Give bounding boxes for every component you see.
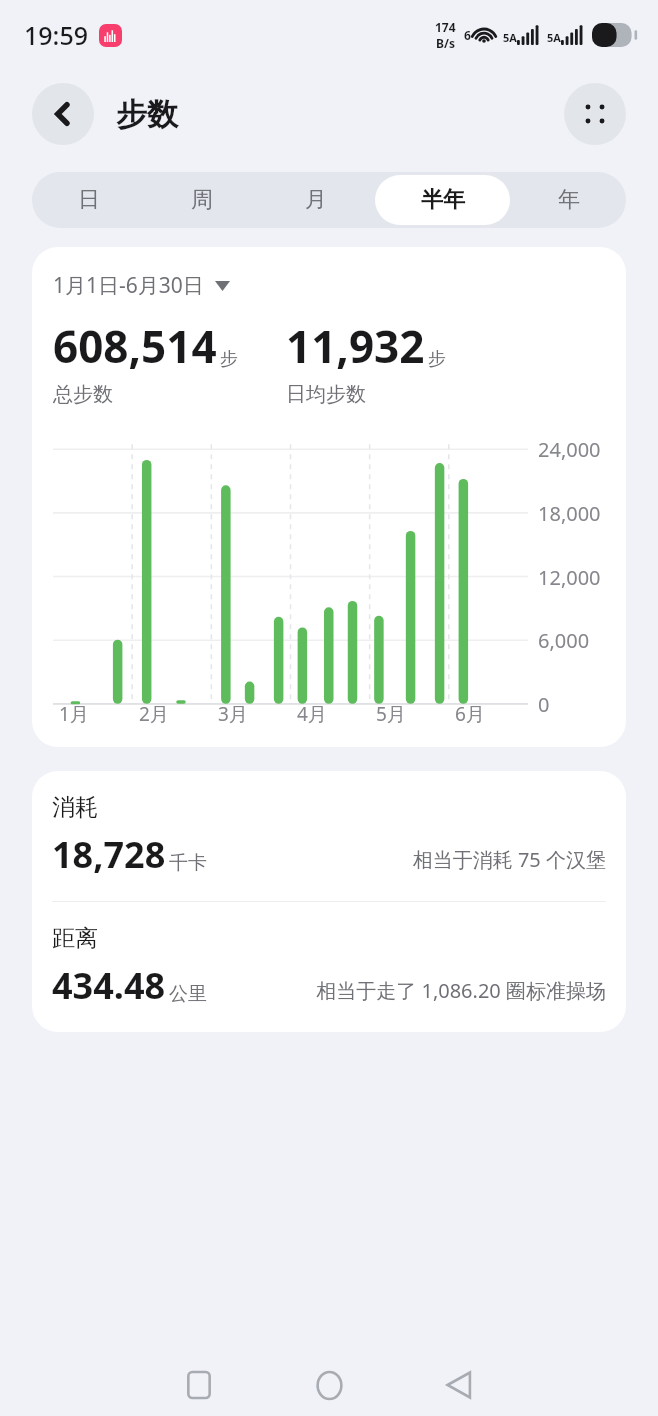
staticText: 总步数 — [53, 382, 113, 407]
staticText: 3月 — [218, 701, 248, 727]
button[interactable]: 半年 — [375, 175, 510, 225]
staticText: 18,000 — [538, 500, 601, 527]
staticText: 2月 — [139, 701, 169, 727]
button[interactable]: 1月1日-6月30日 — [53, 271, 230, 300]
button[interactable]: 主屏幕 — [286, 1354, 372, 1416]
staticText: 174 — [435, 19, 456, 35]
staticText: 半年 — [421, 186, 465, 214]
staticText: 距离 — [52, 924, 98, 953]
staticText: 19:59 — [24, 18, 89, 52]
staticText: 相当于走了 1,086.20 圈标准操场 — [316, 977, 606, 1004]
staticText: 1月 — [59, 701, 89, 727]
staticText: 6 — [464, 27, 471, 43]
staticText: 434.48 — [52, 961, 166, 1010]
staticText: 消耗 — [52, 793, 98, 822]
staticText: 4月 — [297, 701, 327, 727]
button[interactable]: 日 — [34, 175, 143, 225]
staticText: 5A — [503, 30, 517, 45]
staticText: 12,000 — [538, 564, 601, 591]
staticText: 千卡 — [169, 851, 207, 875]
button[interactable]: 月 — [261, 175, 371, 225]
staticText: 公里 — [169, 982, 207, 1006]
staticText: 608,514 — [53, 316, 217, 376]
staticText: 11,932 — [286, 316, 425, 376]
staticText: 月 — [305, 186, 327, 214]
staticText: 年 — [558, 186, 580, 214]
button[interactable]: 返回 — [416, 1354, 502, 1416]
staticText: 5月 — [376, 701, 406, 727]
button[interactable]: 消耗 — [32, 793, 626, 879]
staticText: 5A — [547, 30, 561, 45]
button[interactable]: 最近任务 — [156, 1354, 242, 1416]
staticText: 6,000 — [538, 627, 590, 654]
button[interactable]: 更多 — [564, 83, 626, 145]
staticText: 24,000 — [538, 436, 601, 463]
button[interactable]: 周 — [147, 175, 257, 225]
button[interactable]: 返回 — [32, 83, 94, 145]
staticText: 步 — [428, 348, 446, 371]
button[interactable]: 距离 — [32, 924, 626, 1010]
staticText: 日 — [78, 186, 100, 214]
staticText: 18,728 — [52, 830, 166, 879]
staticText: 0 — [538, 691, 550, 718]
staticText: 步数 — [116, 95, 178, 134]
staticText: 6月 — [455, 701, 485, 727]
staticText: 1月1日-6月30日 — [53, 271, 204, 300]
staticText: B/s — [436, 35, 455, 51]
staticText: 相当于消耗 75 个汉堡 — [412, 846, 606, 873]
staticText: 步 — [220, 348, 238, 371]
staticText: 周 — [191, 186, 213, 214]
staticText: 日均步数 — [286, 382, 366, 407]
button[interactable]: 年 — [514, 175, 624, 225]
